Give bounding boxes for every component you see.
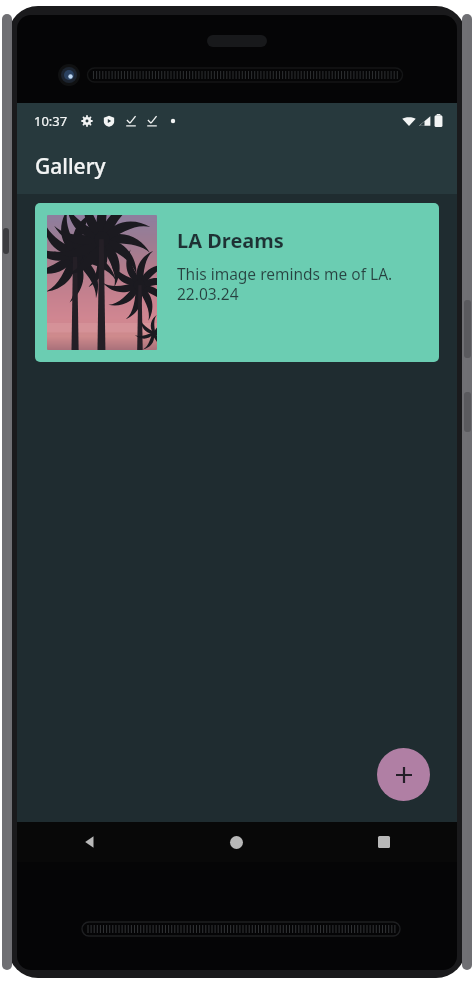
button[interactable]: Home bbox=[163, 822, 310, 862]
staticText: 10:37 bbox=[34, 112, 68, 130]
button[interactable]: Add image bbox=[377, 748, 430, 801]
button[interactable]: Recent apps bbox=[310, 822, 457, 862]
staticText: Gallery bbox=[35, 152, 106, 181]
staticText: LA Dreams bbox=[177, 227, 284, 254]
button[interactable]: Back bbox=[17, 822, 163, 862]
button[interactable]: LA Dreams bbox=[35, 203, 439, 362]
staticText: This image reminds me of LA. 22.03.24 bbox=[177, 263, 427, 305]
